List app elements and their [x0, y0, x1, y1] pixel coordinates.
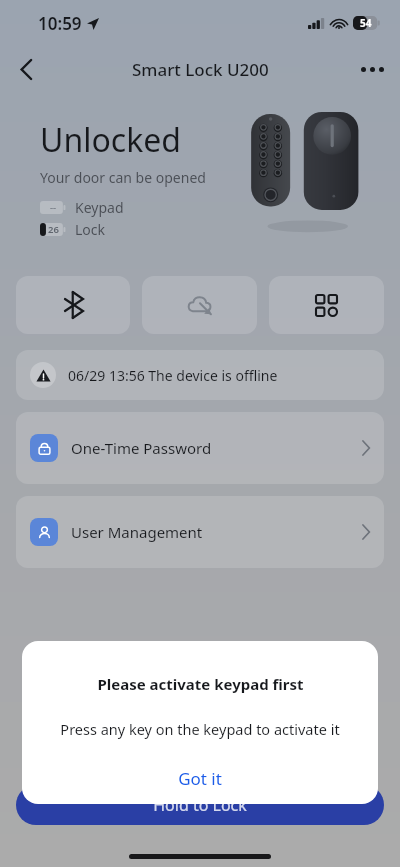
button[interactable]: 06/29 13:56 The device is offline — [16, 350, 384, 400]
button[interactable]: Hold to Lock — [16, 785, 384, 825]
button[interactable]: Back — [6, 49, 46, 89]
staticText: 26 — [48, 223, 59, 236]
staticText: Please activate keypad first — [97, 674, 304, 694]
staticText: Unlocked — [40, 118, 181, 162]
staticText: Hold to Lock — [153, 794, 247, 816]
staticText: Press any key on the keypad to activate … — [60, 719, 340, 739]
staticText: Smart Lock U200 — [132, 58, 269, 81]
button[interactable]: Bluetooth — [16, 276, 130, 334]
staticText: 54 — [360, 16, 372, 30]
staticText: 10:59 — [38, 12, 82, 35]
staticText: 06/29 13:56 The device is offline — [68, 366, 278, 385]
staticText: Got it — [178, 767, 222, 790]
button[interactable]: More options — [352, 49, 392, 89]
button[interactable]: User Management — [16, 496, 384, 568]
staticText: Your door can be opened — [40, 168, 206, 187]
staticText: One-Time Password — [71, 438, 212, 458]
staticText: User Management — [71, 522, 203, 542]
staticText: -- — [50, 201, 57, 214]
staticText: Keypad — [75, 198, 124, 217]
button[interactable]: Cloud disconnected — [142, 276, 257, 334]
button[interactable]: Got it — [38, 761, 362, 795]
button[interactable]: One-Time Password — [16, 412, 384, 484]
staticText: Lock — [75, 220, 106, 239]
button[interactable]: More features — [269, 276, 384, 334]
